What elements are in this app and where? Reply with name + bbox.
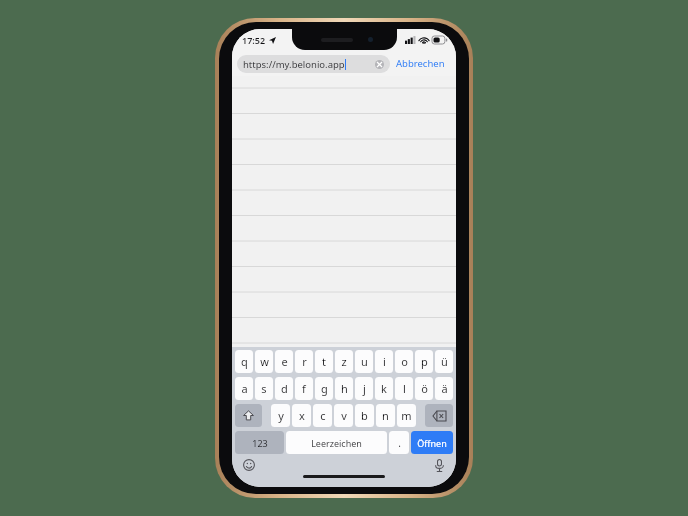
button[interactable]: u bbox=[355, 350, 373, 373]
staticText: 123 bbox=[252, 437, 268, 449]
staticText: w bbox=[260, 354, 269, 369]
staticText: l bbox=[403, 381, 406, 396]
staticText: o bbox=[401, 354, 408, 369]
staticText: i bbox=[383, 354, 386, 369]
staticText: m bbox=[401, 408, 412, 423]
button[interactable]: t bbox=[315, 350, 333, 373]
button[interactable]: Öffnen bbox=[411, 431, 453, 454]
button[interactable]: Emoji bbox=[241, 457, 257, 473]
button[interactable]: . bbox=[389, 431, 409, 454]
staticText: c bbox=[320, 408, 326, 423]
staticText: z bbox=[341, 354, 347, 369]
button[interactable]: ä bbox=[435, 377, 453, 400]
button[interactable]: ö bbox=[415, 377, 433, 400]
button[interactable]: Shift bbox=[235, 404, 262, 427]
staticText: q bbox=[241, 354, 248, 369]
button[interactable]: e bbox=[275, 350, 293, 373]
button[interactable]: j bbox=[355, 377, 373, 400]
staticText: d bbox=[281, 381, 288, 396]
staticText: Abbrechen bbox=[396, 57, 445, 70]
staticText: . bbox=[398, 436, 401, 450]
button[interactable]: m bbox=[397, 404, 416, 427]
staticText: b bbox=[361, 408, 368, 423]
button[interactable]: s bbox=[255, 377, 273, 400]
button[interactable]: https://my.belonio.app bbox=[237, 55, 390, 73]
staticText: j bbox=[363, 381, 366, 396]
staticText: 17:52 bbox=[242, 34, 266, 46]
staticText: https://my.belonio.app bbox=[243, 58, 345, 71]
staticText: x bbox=[299, 408, 305, 423]
button[interactable]: l bbox=[395, 377, 413, 400]
button[interactable]: k bbox=[375, 377, 393, 400]
staticText: y bbox=[278, 408, 284, 423]
staticText: s bbox=[261, 381, 267, 396]
staticText: e bbox=[281, 354, 288, 369]
button[interactable]: a bbox=[235, 377, 253, 400]
staticText: h bbox=[341, 381, 348, 396]
button[interactable]: q bbox=[235, 350, 253, 373]
button[interactable]: d bbox=[275, 377, 293, 400]
staticText: ä bbox=[441, 381, 448, 396]
button[interactable]: Backspace bbox=[425, 404, 453, 427]
button[interactable]: Abbrechen bbox=[390, 54, 451, 73]
button[interactable]: h bbox=[335, 377, 353, 400]
staticText: Öffnen bbox=[417, 437, 447, 449]
staticText: Leerzeichen bbox=[311, 437, 362, 449]
button[interactable]: i bbox=[375, 350, 393, 373]
button[interactable]: o bbox=[395, 350, 413, 373]
button[interactable]: b bbox=[355, 404, 374, 427]
staticText: t bbox=[322, 354, 326, 369]
staticText: k bbox=[381, 381, 387, 396]
button[interactable]: r bbox=[295, 350, 313, 373]
button[interactable]: n bbox=[376, 404, 395, 427]
staticText: p bbox=[421, 354, 428, 369]
button[interactable]: x bbox=[292, 404, 311, 427]
button[interactable]: f bbox=[295, 377, 313, 400]
staticText: g bbox=[321, 381, 328, 396]
staticText: ö bbox=[421, 381, 428, 396]
button[interactable]: Leerzeichen bbox=[286, 431, 387, 454]
button[interactable]: Dictate bbox=[431, 457, 447, 473]
button[interactable]: z bbox=[335, 350, 353, 373]
staticText: ü bbox=[441, 354, 448, 369]
button[interactable]: 123 bbox=[235, 431, 284, 454]
button[interactable]: v bbox=[334, 404, 353, 427]
button[interactable]: c bbox=[313, 404, 332, 427]
staticText: v bbox=[341, 408, 347, 423]
staticText: u bbox=[361, 354, 368, 369]
staticText: a bbox=[241, 381, 248, 396]
button[interactable]: w bbox=[255, 350, 273, 373]
button[interactable]: Clear text bbox=[375, 60, 384, 69]
button[interactable]: g bbox=[315, 377, 333, 400]
button[interactable]: ü bbox=[435, 350, 453, 373]
staticText: n bbox=[382, 408, 389, 423]
staticText: r bbox=[302, 354, 307, 369]
button[interactable]: y bbox=[271, 404, 290, 427]
button[interactable]: p bbox=[415, 350, 433, 373]
staticText: f bbox=[302, 381, 306, 396]
